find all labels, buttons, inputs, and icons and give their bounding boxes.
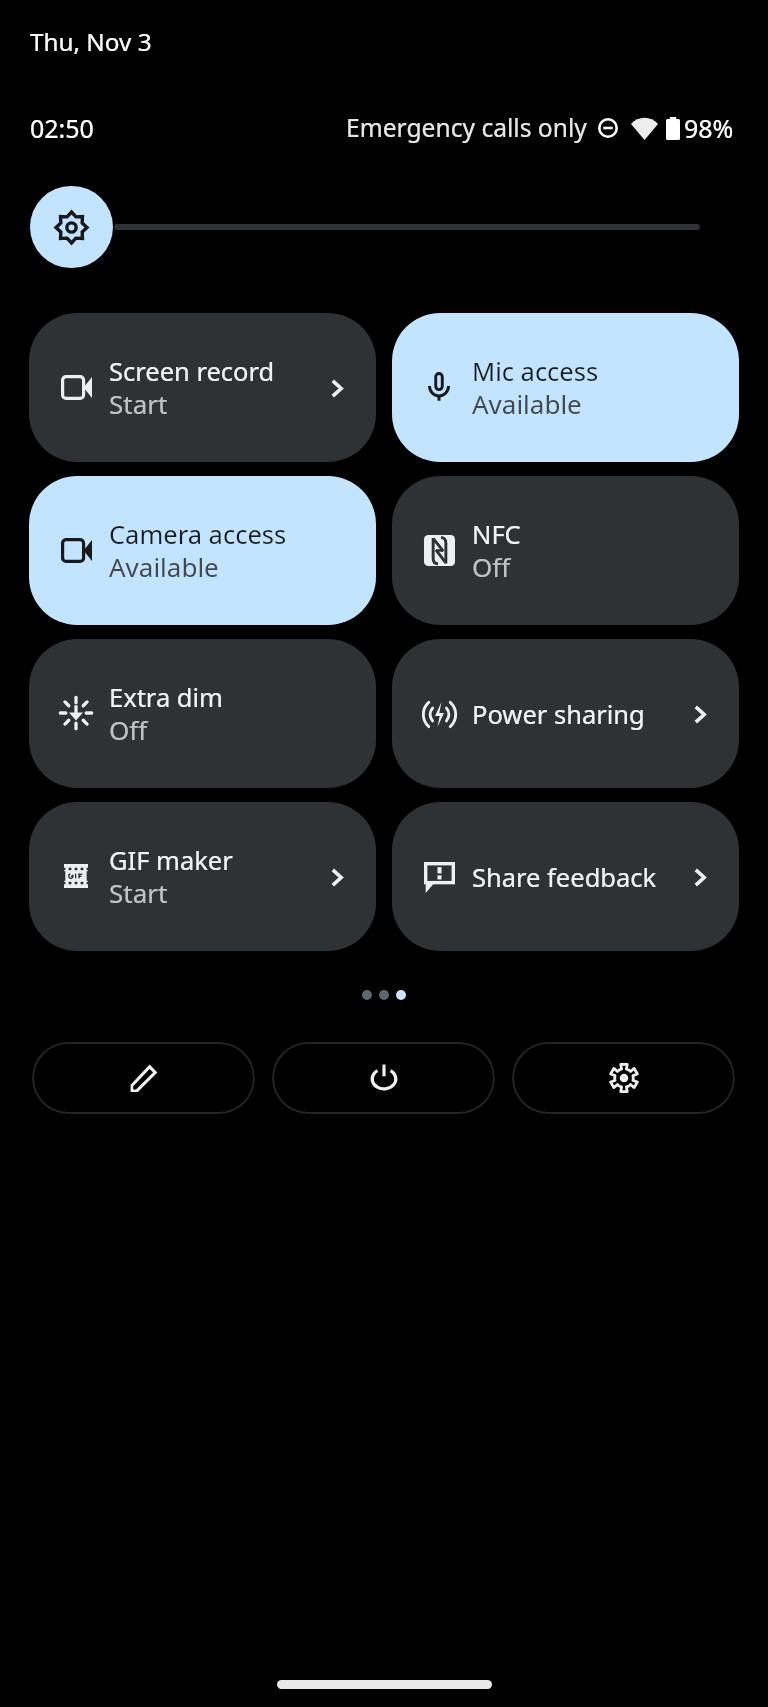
staticText: Emergency calls only bbox=[346, 111, 587, 145]
staticText: Power sharing bbox=[472, 697, 645, 732]
button[interactable]: Power sharing bbox=[392, 639, 739, 788]
button[interactable]: NFC bbox=[392, 476, 739, 625]
staticText: NFC bbox=[472, 517, 521, 552]
staticText: Share feedback bbox=[472, 860, 657, 895]
staticText: Mic access bbox=[472, 354, 599, 389]
staticText: Extra dim bbox=[109, 680, 223, 715]
staticText: 02:50 bbox=[30, 111, 94, 145]
staticText: Available bbox=[109, 549, 219, 584]
button[interactable]: Power bbox=[272, 1042, 495, 1114]
staticText: Start bbox=[109, 386, 168, 421]
button[interactable]: Settings bbox=[512, 1042, 735, 1114]
staticText: Start bbox=[109, 875, 168, 910]
button[interactable]: Share feedback bbox=[392, 802, 739, 951]
staticText: Camera access bbox=[109, 517, 287, 552]
staticText: GIF maker bbox=[109, 843, 233, 878]
staticText: Off bbox=[109, 712, 148, 747]
staticText: Screen record bbox=[109, 354, 275, 389]
button[interactable]: Extra dim bbox=[29, 639, 376, 788]
button[interactable]: GIF maker bbox=[29, 802, 376, 951]
staticText: Thu, Nov 3 bbox=[30, 25, 152, 58]
button[interactable]: Camera access bbox=[29, 476, 376, 625]
staticText: Available bbox=[472, 386, 582, 421]
button[interactable]: Mic access bbox=[392, 313, 739, 462]
staticText: 98% bbox=[684, 111, 734, 145]
button[interactable]: Screen record bbox=[29, 313, 376, 462]
staticText: Off bbox=[472, 549, 511, 584]
button[interactable]: Brightness bbox=[30, 186, 113, 268]
button[interactable]: Edit tiles bbox=[32, 1042, 255, 1114]
